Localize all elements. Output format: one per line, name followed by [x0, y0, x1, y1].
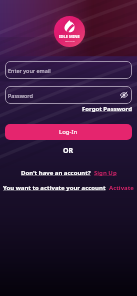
staticText: Activate — [109, 184, 134, 192]
staticText: You want to activate your account — [3, 184, 106, 192]
staticText: Log-In — [59, 128, 78, 136]
button[interactable]: Log-In — [5, 124, 132, 140]
button[interactable]: Activate — [109, 184, 134, 192]
button[interactable]: Password — [5, 86, 132, 104]
staticText: Don't have an account? — [21, 169, 91, 177]
staticText: Forgot Password — [82, 105, 132, 113]
button[interactable]: Sign Up — [94, 169, 117, 177]
button[interactable]: Enter your email — [5, 61, 132, 79]
staticText: Sign Up — [94, 169, 117, 177]
button[interactable]: Show password — [120, 91, 128, 99]
staticText: OR — [63, 146, 74, 156]
staticText: Enter your email — [8, 67, 51, 74]
staticText: MINING — [65, 39, 75, 42]
staticText: IDLE MINE — [59, 34, 80, 39]
button[interactable]: Forgot Password — [82, 105, 132, 113]
staticText: Password — [8, 92, 33, 99]
